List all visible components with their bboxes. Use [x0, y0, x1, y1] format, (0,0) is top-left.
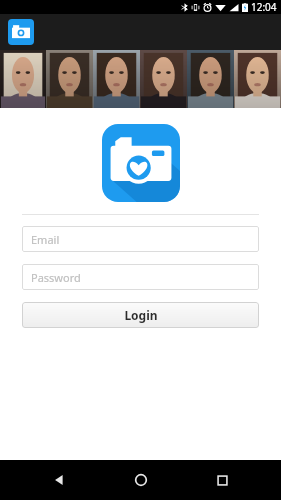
button[interactable]: Email: [22, 226, 259, 252]
button[interactable]: Photo thumbnail: [140, 50, 187, 108]
staticText: Email: [31, 232, 60, 247]
button[interactable]: Login: [22, 302, 259, 328]
button[interactable]: Home: [119, 460, 163, 500]
staticText: Password: [31, 270, 81, 285]
button[interactable]: Photo thumbnail: [46, 50, 93, 108]
staticText: Login: [124, 307, 158, 323]
button[interactable]: Photo thumbnail: [187, 50, 234, 108]
button[interactable]: Photo thumbnail: [234, 50, 281, 108]
button[interactable]: Recent apps: [200, 460, 244, 500]
button[interactable]: App logo: [102, 124, 180, 202]
button[interactable]: Password: [22, 264, 259, 290]
button[interactable]: Photo thumbnail: [93, 50, 140, 108]
button[interactable]: Photo thumbnail: [0, 50, 46, 108]
button[interactable]: Back: [37, 460, 81, 500]
button[interactable]: App icon: [8, 19, 34, 45]
staticText: 12:04: [251, 0, 277, 14]
